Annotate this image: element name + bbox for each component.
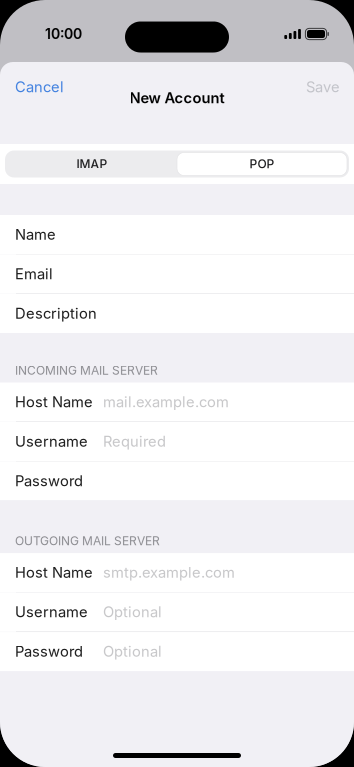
staticText: Required — [103, 433, 166, 450]
staticText: Description — [15, 305, 97, 322]
button[interactable]: Username — [0, 422, 354, 461]
button[interactable]: Description — [0, 294, 354, 333]
button[interactable]: Host Name — [0, 553, 354, 592]
staticText: 10:00 — [45, 25, 82, 42]
staticText: Host Name — [15, 393, 93, 411]
staticText: Password — [15, 643, 83, 660]
staticText: Username — [15, 603, 88, 621]
staticText: smtp.example.com — [103, 564, 235, 581]
button[interactable]: Username — [0, 592, 354, 631]
staticText: OUTGOING MAIL SERVER — [15, 533, 160, 548]
staticText: Optional — [103, 603, 162, 621]
staticText: POP — [249, 157, 274, 171]
staticText: Name — [15, 226, 56, 243]
staticText: Cancel — [15, 78, 64, 96]
staticText: Password — [15, 472, 83, 490]
button[interactable]: Password — [0, 461, 354, 500]
staticText: Host Name — [15, 564, 93, 581]
staticText: Email — [15, 265, 53, 283]
button[interactable]: Password — [0, 632, 354, 671]
button[interactable]: Save — [294, 67, 354, 107]
staticText: IMAP — [76, 157, 107, 171]
staticText: INCOMING MAIL SERVER — [15, 363, 158, 377]
staticText: New Account — [129, 89, 224, 107]
button[interactable]: Name — [0, 215, 354, 254]
button[interactable]: IMAP — [7, 152, 177, 175]
staticText: Save — [306, 78, 340, 96]
staticText: Optional — [103, 643, 162, 660]
button[interactable]: POP — [177, 152, 347, 175]
button[interactable]: Email — [0, 254, 354, 293]
staticText: Username — [15, 433, 88, 450]
button[interactable]: Cancel — [0, 67, 76, 107]
staticText: mail.example.com — [103, 393, 229, 411]
button[interactable]: Host Name — [0, 382, 354, 421]
